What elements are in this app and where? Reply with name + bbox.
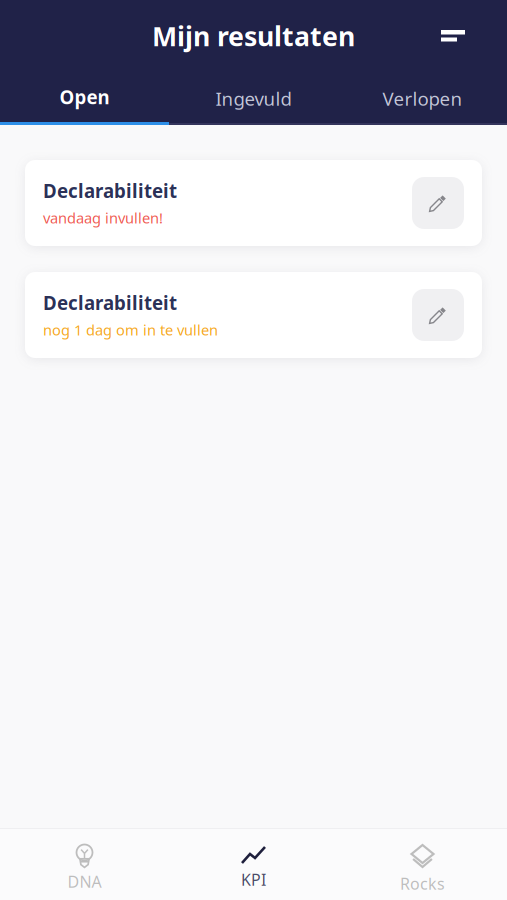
staticText: Ingevuld [215, 86, 291, 111]
staticText: Verlopen [382, 86, 462, 111]
staticText: vandaag invullen! [43, 208, 163, 228]
button[interactable]: Ingevuld [169, 72, 338, 125]
button[interactable]: Open [0, 72, 169, 125]
staticText: Mijn resultaten [152, 18, 355, 54]
staticText: Declarabiliteit [43, 178, 177, 203]
staticText: Rocks [400, 873, 445, 894]
button[interactable]: Rocks [338, 829, 507, 900]
staticText: nog 1 dag om in te vullen [43, 320, 218, 340]
button[interactable]: DNA [0, 829, 169, 900]
button[interactable]: KPI [169, 829, 338, 900]
staticText: Open [59, 85, 109, 109]
button[interactable]: Edit [412, 177, 464, 229]
button[interactable]: Edit [412, 289, 464, 341]
staticText: DNA [67, 871, 101, 892]
button[interactable]: Verlopen [338, 72, 507, 125]
staticText: KPI [241, 869, 266, 890]
staticText: Declarabiliteit [43, 290, 177, 315]
button[interactable]: Menu [426, 14, 480, 58]
